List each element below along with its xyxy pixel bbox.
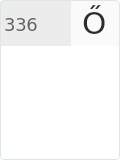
staticText: 336 <box>4 14 38 35</box>
staticText: Ő <box>82 5 107 41</box>
button[interactable]: 336 <box>0 0 71 46</box>
button[interactable]: Ő <box>71 0 120 46</box>
